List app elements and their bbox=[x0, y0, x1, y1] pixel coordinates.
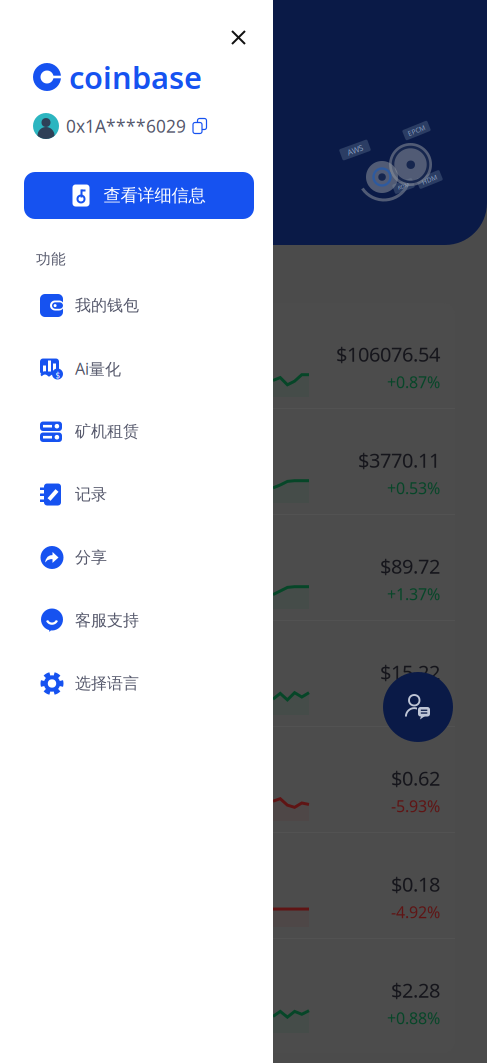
staticText: $89.72 bbox=[380, 553, 440, 579]
staticText: 分享 bbox=[75, 548, 107, 567]
staticText: +0.53% bbox=[387, 477, 440, 499]
staticText: 0x1A****6029 bbox=[66, 114, 186, 137]
staticText: 我的钱包 bbox=[75, 296, 139, 315]
staticText: 客服支持 bbox=[75, 611, 139, 630]
staticText: -5.93% bbox=[391, 795, 440, 817]
staticText: +1.37% bbox=[387, 583, 440, 605]
button[interactable]: Close menu bbox=[219, 18, 258, 57]
staticText: $0.18 bbox=[391, 871, 440, 897]
staticText: $ bbox=[55, 370, 60, 381]
staticText: 查看详细信息 bbox=[103, 185, 205, 206]
staticText: EPCM bbox=[407, 126, 425, 135]
button[interactable]: 客服支持 bbox=[40, 589, 265, 652]
button[interactable]: 0x1A****6029 bbox=[33, 113, 207, 139]
staticText: coinbase bbox=[69, 57, 202, 97]
button[interactable]: 我的钱包 bbox=[40, 274, 265, 337]
staticText: $3770.11 bbox=[358, 447, 440, 473]
button[interactable]: 矿机租赁 bbox=[40, 400, 265, 463]
staticText: RDM bbox=[397, 182, 409, 190]
button[interactable]: $ bbox=[40, 337, 265, 400]
staticText: AWS bbox=[347, 145, 363, 155]
staticText: $0.62 bbox=[391, 765, 440, 791]
staticText: HDM bbox=[421, 175, 437, 184]
staticText: -4.92% bbox=[391, 901, 440, 923]
staticText: $15.22 bbox=[380, 659, 440, 685]
staticText: $2.28 bbox=[391, 977, 440, 1003]
button[interactable]: 查看详细信息 bbox=[24, 172, 254, 219]
button[interactable]: Customer support bbox=[383, 672, 453, 742]
button[interactable]: 选择语言 bbox=[40, 652, 265, 715]
staticText: Ai量化 bbox=[75, 358, 121, 379]
staticText: +0.88% bbox=[387, 1007, 440, 1029]
staticText: 矿机租赁 bbox=[75, 422, 139, 441]
staticText: 记录 bbox=[75, 485, 107, 504]
staticText: $106076.54 bbox=[336, 341, 440, 367]
button[interactable]: 记录 bbox=[40, 463, 265, 526]
staticText: +0.87% bbox=[387, 371, 440, 393]
staticText: 功能 bbox=[36, 250, 66, 268]
button[interactable]: 分享 bbox=[40, 526, 265, 589]
staticText: 选择语言 bbox=[75, 674, 139, 693]
